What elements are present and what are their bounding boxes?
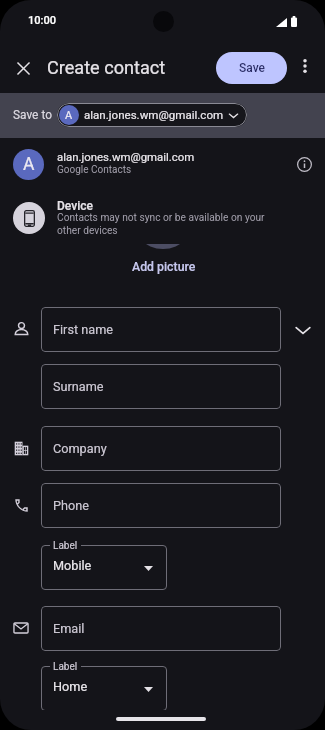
- button[interactable]: [0, 140, 325, 190]
- staticText: A: [23, 154, 35, 175]
- staticText: alan.jones.wm@gmail.com: [84, 108, 224, 122]
- button[interactable]: [41, 666, 167, 710]
- button[interactable]: Save: [216, 52, 287, 84]
- button[interactable]: Expand name fields: [293, 320, 312, 339]
- button[interactable]: Add picture: [130, 183, 196, 249]
- button[interactable]: Company: [41, 426, 281, 471]
- staticText: Phone: [53, 498, 89, 513]
- button[interactable]: Phone: [41, 483, 281, 528]
- button[interactable]: First name: [41, 307, 281, 352]
- button[interactable]: [41, 545, 167, 590]
- staticText: Email: [53, 621, 85, 636]
- staticText: Contacts may not sync or be available on…: [57, 212, 282, 236]
- staticText: Mobile: [53, 558, 92, 573]
- button[interactable]: A: [57, 103, 247, 127]
- staticText: Save to: [13, 108, 52, 122]
- staticText: Surname: [53, 379, 104, 394]
- button[interactable]: Add picture: [132, 260, 196, 274]
- staticText: A: [65, 109, 73, 122]
- staticText: Label: [53, 540, 78, 552]
- button[interactable]: Surname: [41, 364, 281, 409]
- button[interactable]: Email: [41, 606, 281, 651]
- staticText: Google Contacts: [57, 164, 132, 176]
- staticText: alan.jones.wm@gmail.com: [57, 150, 195, 163]
- staticText: First name: [53, 322, 114, 337]
- staticText: Create contact: [47, 57, 166, 78]
- button[interactable]: Close: [7, 52, 39, 84]
- button[interactable]: [0, 196, 325, 244]
- staticText: Device: [57, 199, 93, 213]
- staticText: Save: [239, 61, 265, 75]
- staticText: Home: [53, 679, 88, 694]
- staticText: Company: [53, 441, 107, 456]
- button[interactable]: More options: [292, 55, 318, 81]
- staticText: Label: [53, 661, 78, 673]
- staticText: 10:00: [28, 14, 57, 27]
- button[interactable]: Info: [293, 153, 315, 175]
